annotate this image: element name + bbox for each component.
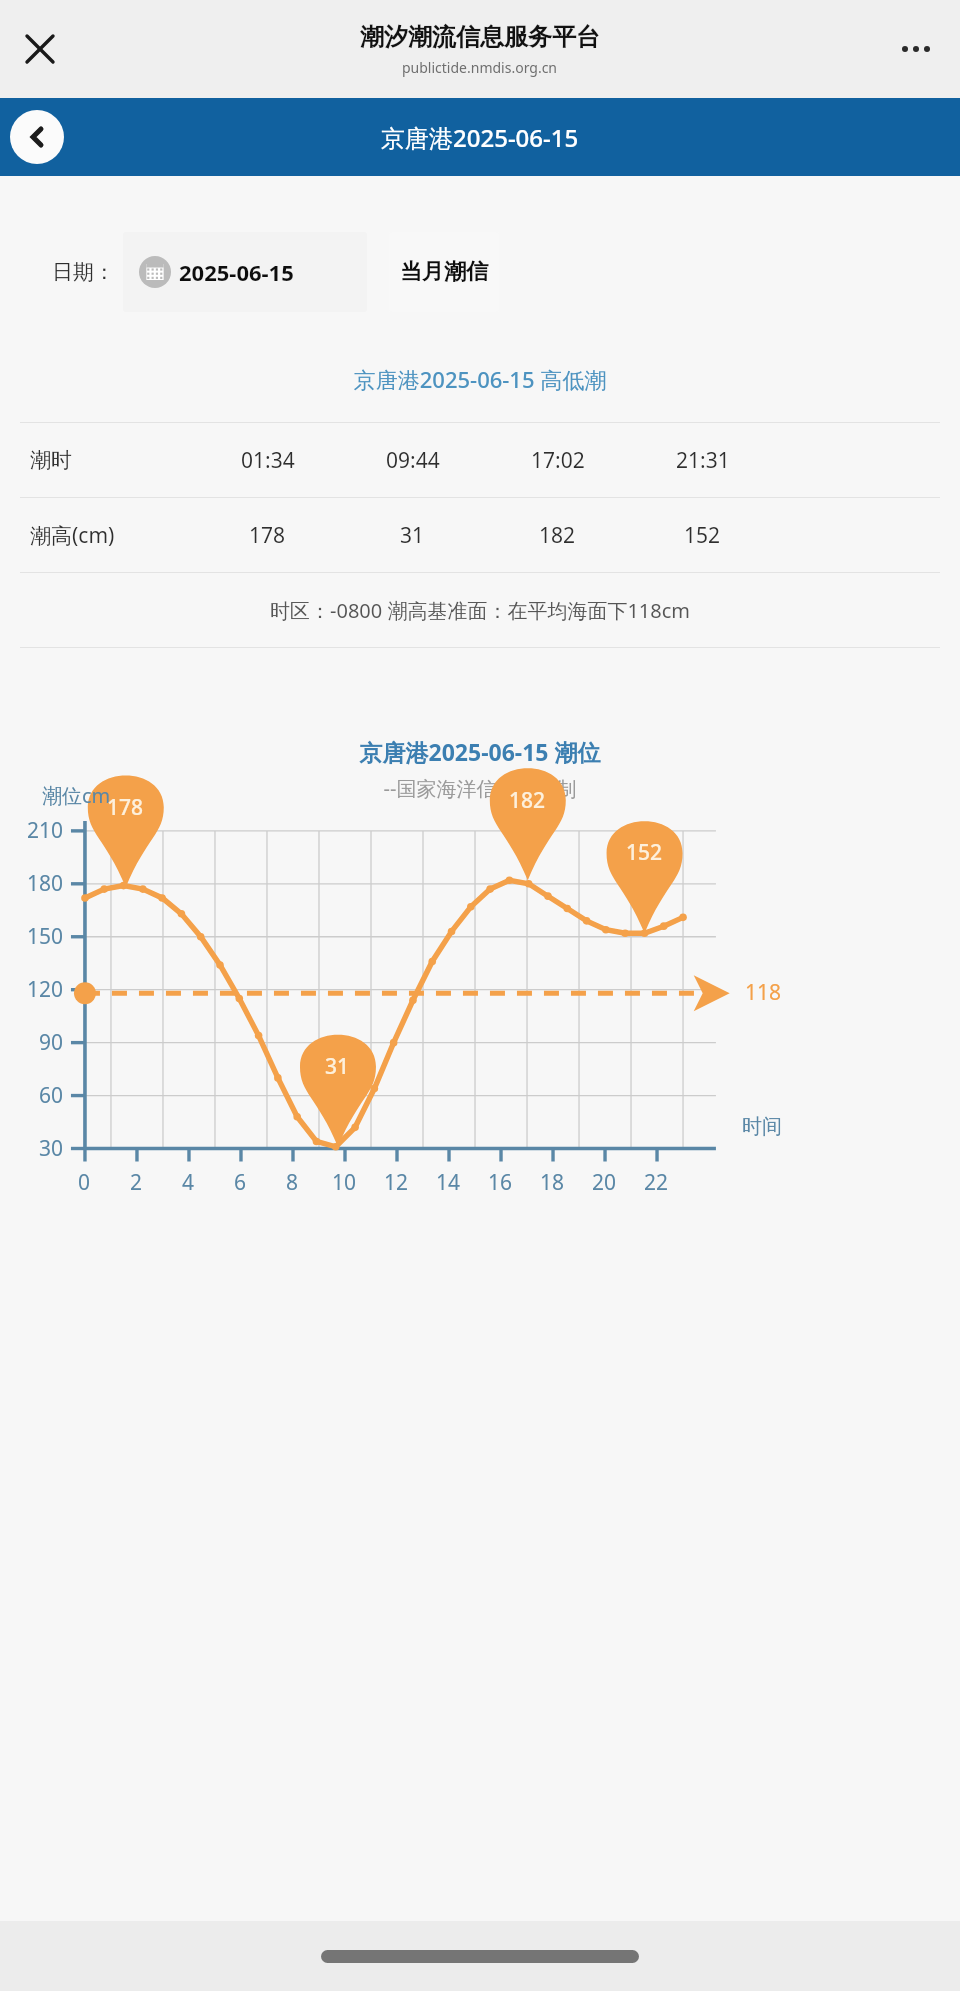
staticText: 60 bbox=[39, 1081, 64, 1110]
staticText: 潮位cm bbox=[42, 782, 111, 809]
staticText: 时间 bbox=[742, 1114, 782, 1139]
staticText: 180 bbox=[27, 869, 64, 898]
staticText: 90 bbox=[39, 1028, 64, 1057]
staticText: 6 bbox=[234, 1168, 247, 1197]
staticText: 210 bbox=[27, 816, 64, 845]
staticText: 潮高(cm) bbox=[30, 521, 115, 550]
staticText: 2 bbox=[130, 1168, 143, 1197]
staticText: 20 bbox=[592, 1168, 617, 1197]
staticText: 时区：-0800 潮高基准面：在平均海面下118cm bbox=[270, 597, 691, 624]
staticText: 潮汐潮流信息服务平台 bbox=[360, 22, 600, 52]
staticText: publictide.nmdis.org.cn bbox=[402, 58, 558, 77]
button[interactable]: More options bbox=[888, 21, 944, 77]
staticText: 16 bbox=[488, 1168, 513, 1197]
staticText: 152 bbox=[626, 838, 663, 867]
staticText: 10 bbox=[332, 1168, 357, 1197]
staticText: 2025-06-15 bbox=[179, 257, 294, 287]
staticText: 182 bbox=[539, 521, 576, 550]
button[interactable]: 2025-06-15 bbox=[123, 232, 367, 312]
staticText: 09:44 bbox=[386, 446, 440, 475]
staticText: 178 bbox=[107, 793, 144, 822]
staticText: 8 bbox=[286, 1168, 299, 1197]
staticText: 12 bbox=[384, 1168, 409, 1197]
staticText: 潮时 bbox=[30, 447, 72, 473]
staticText: 118 bbox=[745, 978, 782, 1007]
button[interactable]: Close bbox=[12, 21, 68, 77]
button[interactable]: Back bbox=[10, 110, 64, 164]
button[interactable]: 当月潮信 bbox=[389, 232, 499, 312]
staticText: 18 bbox=[540, 1168, 565, 1197]
staticText: 4 bbox=[182, 1168, 195, 1197]
staticText: --国家海洋信息中心制 bbox=[0, 775, 960, 802]
staticText: 21:31 bbox=[676, 446, 730, 475]
staticText: 01:34 bbox=[241, 446, 295, 475]
staticText: 31 bbox=[400, 521, 425, 550]
staticText: 0 bbox=[78, 1168, 91, 1197]
staticText: 京唐港2025-06-15 高低潮 bbox=[0, 364, 960, 394]
staticText: 14 bbox=[436, 1168, 461, 1197]
staticText: 当月潮信 bbox=[400, 258, 488, 286]
staticText: 日期： bbox=[52, 259, 115, 285]
staticText: 152 bbox=[684, 521, 721, 550]
staticText: 京唐港2025-06-15 潮位 bbox=[0, 736, 960, 767]
staticText: 22 bbox=[644, 1168, 669, 1197]
staticText: 京唐港2025-06-15 bbox=[381, 121, 579, 154]
staticText: 17:02 bbox=[531, 446, 585, 475]
staticText: 182 bbox=[509, 786, 546, 815]
staticText: 30 bbox=[39, 1134, 64, 1163]
staticText: 178 bbox=[249, 521, 286, 550]
staticText: 31 bbox=[325, 1052, 350, 1081]
staticText: 150 bbox=[27, 922, 64, 951]
staticText: 120 bbox=[27, 975, 64, 1004]
